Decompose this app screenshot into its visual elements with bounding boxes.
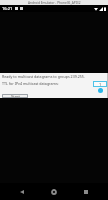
button[interactable]: TTL value input: [93, 81, 107, 93]
button[interactable]: Home: [44, 183, 64, 200]
staticText: TTL for IPv4 multicast datagrams:: [2, 81, 59, 86]
staticText: 16:21: [2, 6, 13, 11]
staticText: Start: [11, 94, 20, 98]
staticText: 1: [99, 82, 102, 87]
button[interactable]: Back: [12, 183, 32, 200]
staticText: Ready to multicast datagrams to groups 2…: [2, 74, 85, 79]
button[interactable]: Recent apps: [76, 183, 96, 200]
button[interactable]: Start: [2, 94, 28, 98]
staticText: Android Emulator - Phone36_API32: [28, 1, 81, 5]
